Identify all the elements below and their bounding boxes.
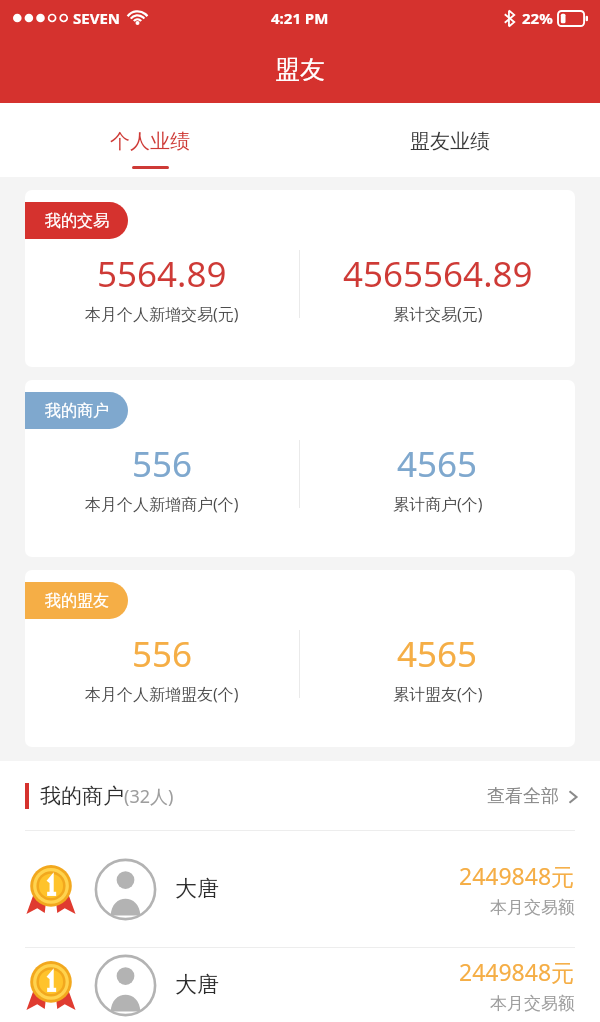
button[interactable]: 个人业绩 [0, 103, 300, 177]
button[interactable]: Rank 1 medal [0, 948, 600, 1022]
staticText: (32人) [124, 784, 174, 809]
staticText: 大唐 [175, 971, 219, 999]
staticText: SEVEN [73, 8, 121, 28]
staticText: 5564.89 [97, 250, 227, 298]
staticText: 4565564.89 [343, 250, 533, 298]
staticText: 2449848元 [459, 956, 575, 987]
staticText: 累计商户(个) [393, 493, 483, 515]
staticText: 本月个人新增商户(个) [85, 493, 239, 515]
staticText: 2449848元 [459, 860, 575, 891]
staticText: 个人业绩 [110, 129, 190, 154]
staticText: 556 [132, 440, 193, 488]
staticText: 我的商户 [45, 401, 109, 421]
button[interactable]: 我的盟友 [25, 570, 575, 747]
staticText: 我的商户 [40, 783, 124, 809]
staticText: 本月交易额 [490, 993, 575, 1014]
staticText: 盟友业绩 [410, 129, 490, 154]
staticText: 我的盟友 [45, 591, 109, 611]
other: Rank 1 medal [25, 959, 77, 1011]
staticText: 累计交易(元) [393, 303, 483, 325]
button[interactable]: 我的商户 [25, 380, 575, 557]
other: Rank 1 medal [25, 863, 77, 915]
staticText: 累计盟友(个) [393, 683, 483, 705]
staticText: 本月交易额 [490, 897, 575, 918]
staticText: 4565 [397, 440, 478, 488]
staticText: 大唐 [175, 875, 219, 903]
staticText: 4565 [397, 630, 478, 678]
button[interactable]: 盟友业绩 [300, 103, 600, 177]
staticText: 4:21 PM [271, 8, 329, 28]
staticText: 查看全部 [487, 785, 559, 808]
button[interactable]: 我的交易 [25, 190, 575, 367]
staticText: 本月个人新增交易(元) [85, 303, 239, 325]
staticText: 本月个人新增盟友(个) [85, 683, 239, 705]
button[interactable]: 查看全部 [487, 785, 578, 808]
button[interactable]: Rank 1 medal [0, 831, 600, 947]
staticText: 22% [522, 8, 553, 28]
staticText: 556 [132, 630, 193, 678]
staticText: 盟友 [275, 54, 325, 85]
staticText: 我的交易 [45, 211, 109, 231]
